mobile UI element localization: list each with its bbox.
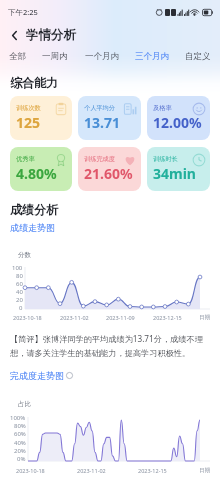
staticText: 下午2:25 [8, 7, 38, 17]
button[interactable]: 优秀率 [10, 147, 72, 191]
button[interactable]: 训练时长 [147, 147, 210, 191]
staticText: 三个月内 [135, 51, 169, 62]
staticText: 日期 [199, 467, 210, 474]
button[interactable]: 训练次数 [10, 96, 72, 140]
button[interactable]: 三个月内 [135, 51, 169, 62]
staticText: 训练完成度 [84, 155, 115, 163]
staticText: 100 [12, 264, 23, 272]
staticText: 34min [153, 164, 196, 183]
button[interactable]: 及格率 [147, 96, 210, 140]
staticText: 个人平均分 [84, 104, 115, 112]
staticText: 2023-12-15 [138, 467, 167, 474]
staticText: 占比 [18, 400, 31, 408]
staticText: 全部 [9, 51, 26, 62]
button[interactable]: Back [5, 26, 23, 44]
staticText: 100% [10, 414, 26, 422]
staticText: 一周内 [42, 51, 68, 62]
staticText: 【简评】张博洋同学的平均成绩为13.71分，成绩不理想，请多关注学生的基础能力，… [10, 333, 210, 358]
button[interactable]: 训练完成度 [78, 147, 141, 191]
staticText: 日期 [199, 314, 210, 321]
staticText: 60% [14, 430, 26, 438]
staticText: 0 [19, 304, 23, 311]
button[interactable]: 个人平均分 [78, 96, 141, 140]
staticText: 学情分析 [26, 27, 76, 43]
button[interactable]: 一个月内 [85, 51, 119, 62]
staticText: 60 [16, 280, 23, 288]
staticText: 40% [14, 439, 26, 447]
staticText: 成绩走势图 [10, 222, 55, 233]
staticText: 优秀率 [16, 155, 35, 163]
staticText: 4.80% [16, 164, 57, 183]
staticText: 2023-11-02 [60, 314, 89, 321]
staticText: 21.60% [84, 164, 133, 183]
staticText: 80 [16, 272, 23, 280]
staticText: 一个月内 [85, 51, 119, 62]
staticText: 125 [16, 113, 41, 132]
staticText: 2023-12-15 [153, 314, 182, 321]
staticText: 2023-11-02 [77, 467, 106, 474]
staticText: 成绩分析 [10, 202, 58, 217]
staticText: 分数 [18, 251, 31, 259]
button[interactable]: 完成度走势图 [10, 370, 73, 381]
staticText: 20% [14, 447, 26, 455]
staticText: 训练次数 [16, 104, 41, 112]
staticText: 2023-11-09 [106, 314, 135, 321]
staticText: 80% [14, 422, 26, 430]
staticText: 2023-10-18 [13, 314, 42, 321]
staticText: 自定义 [185, 51, 211, 62]
staticText: 40 [16, 288, 23, 296]
staticText: 完成度走势图 [10, 370, 64, 381]
staticText: 及格率 [153, 104, 172, 112]
staticText: 13.71 [84, 113, 120, 132]
staticText: 12.00% [153, 113, 202, 132]
staticText: 2023-10-18 [16, 467, 45, 474]
button[interactable]: 一周内 [42, 51, 68, 62]
staticText: 0% [17, 455, 26, 463]
staticText: 训练时长 [153, 155, 178, 163]
button[interactable]: 自定义 [185, 51, 211, 62]
staticText: 20 [16, 296, 23, 304]
staticText: 综合能力 [10, 75, 58, 90]
button[interactable]: 全部 [9, 51, 26, 62]
